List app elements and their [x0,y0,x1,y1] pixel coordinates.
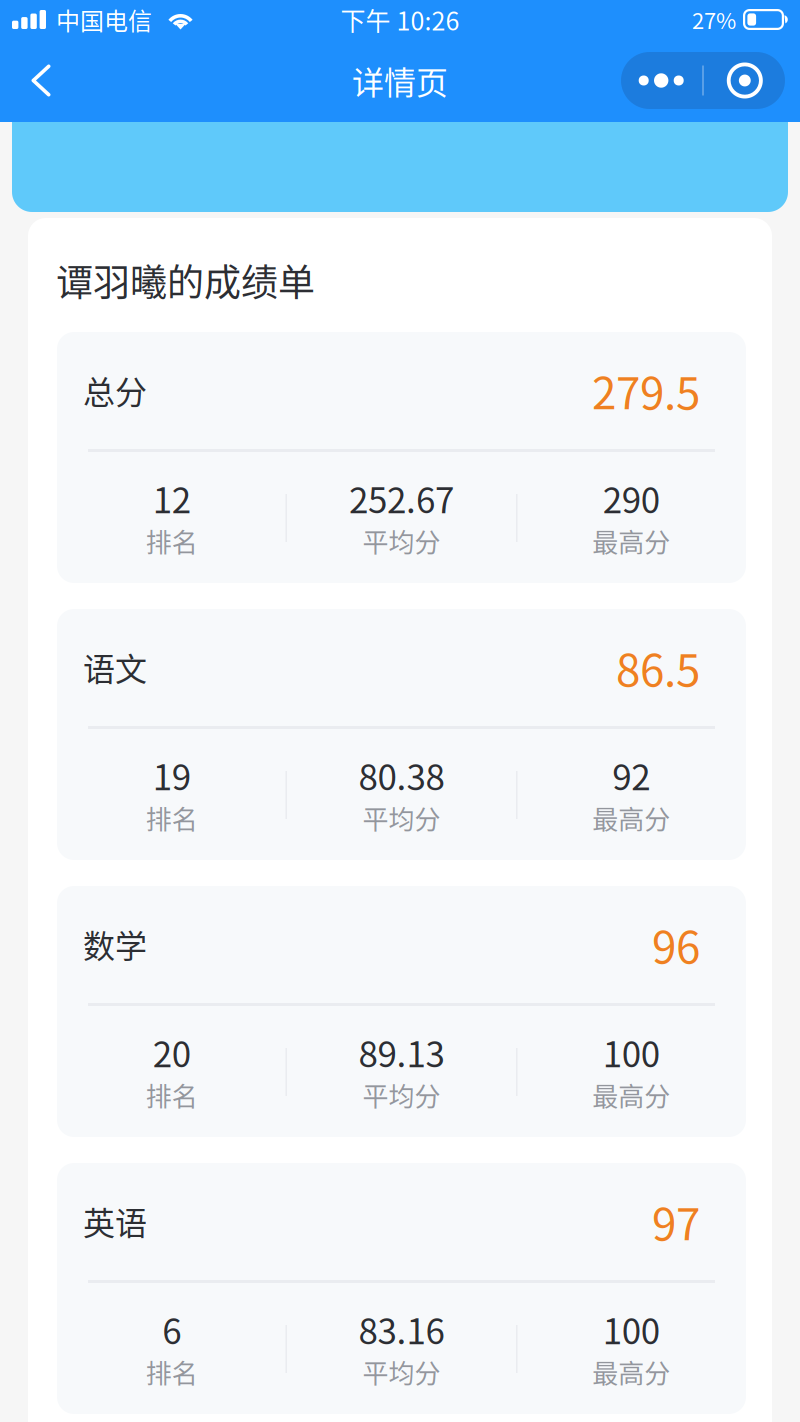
staticText: 20 [153,1027,191,1077]
staticText: 谭羽曦的成绩单 [56,253,315,307]
staticText: 80.38 [358,750,444,800]
staticText: 252.67 [349,473,454,523]
staticText: 中国电信 [56,2,152,37]
staticText: 详情页 [352,57,448,104]
staticText: 6 [162,1304,181,1354]
staticText: 平均分 [362,799,440,837]
staticText: 最高分 [592,1076,670,1114]
staticText: 数学 [83,921,147,967]
staticText: 语文 [83,644,147,690]
staticText: 279.5 [592,358,700,422]
staticText: 27% [692,4,736,35]
staticText: 排名 [146,1353,198,1391]
staticText: 19 [153,750,191,800]
staticText: 100 [603,1304,660,1354]
staticText: 排名 [146,1076,198,1114]
staticText: 97 [652,1189,700,1253]
staticText: 英语 [83,1198,147,1244]
staticText: 平均分 [362,1076,440,1114]
button[interactable]: 关闭 [704,52,786,109]
staticText: 96 [652,912,700,976]
staticText: 290 [603,473,660,523]
button[interactable]: 更多 [620,52,702,109]
staticText: 92 [612,750,650,800]
staticText: 最高分 [592,1353,670,1391]
staticText: 总分 [83,367,147,413]
staticText: 83.16 [358,1304,444,1354]
staticText: 86.5 [616,635,700,699]
staticText: 12 [153,473,191,523]
staticText: 100 [603,1027,660,1077]
staticText: 平均分 [362,1353,440,1391]
button[interactable]: 返回 [9,48,73,112]
staticText: 最高分 [592,799,670,837]
staticText: 平均分 [362,522,440,560]
staticText: 最高分 [592,522,670,560]
staticText: 排名 [146,522,198,560]
staticText: 排名 [146,799,198,837]
staticText: 下午 10:26 [340,1,459,38]
staticText: 89.13 [358,1027,444,1077]
